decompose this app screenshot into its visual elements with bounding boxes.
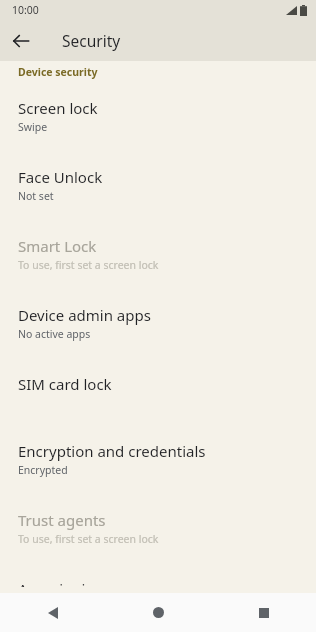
- staticText: Encrypted: [18, 463, 68, 477]
- staticText: To use, first set a screen lock: [18, 532, 159, 546]
- button[interactable]: Encryption and credentials: [0, 435, 316, 504]
- staticText: Not set: [18, 189, 54, 203]
- staticText: App pinning: [18, 579, 104, 587]
- button[interactable]: Back: [0, 20, 42, 61]
- button[interactable]: SIM card lock: [0, 368, 316, 435]
- button[interactable]: Screen lock: [0, 92, 316, 161]
- button[interactable]: Recent apps: [211, 593, 316, 632]
- staticText: Trust agents: [18, 510, 106, 530]
- button[interactable]: Home: [106, 593, 211, 632]
- staticText: Device security: [18, 65, 98, 79]
- staticText: Screen lock: [18, 98, 98, 118]
- button[interactable]: Device admin apps: [0, 299, 316, 368]
- staticText: Security: [62, 30, 121, 51]
- staticText: To use, first set a screen lock: [18, 258, 159, 272]
- staticText: Face Unlock: [18, 167, 103, 187]
- button[interactable]: App pinning: [0, 573, 316, 593]
- button[interactable]: Smart Lock: [0, 230, 316, 299]
- button[interactable]: Face Unlock: [0, 161, 316, 230]
- staticText: Swipe: [18, 120, 48, 134]
- staticText: Encryption and credentials: [18, 441, 206, 461]
- button[interactable]: Trust agents: [0, 504, 316, 573]
- staticText: Smart Lock: [18, 236, 97, 256]
- staticText: No active apps: [18, 327, 91, 341]
- button[interactable]: Back: [0, 593, 106, 632]
- staticText: Device admin apps: [18, 305, 151, 325]
- staticText: SIM card lock: [18, 374, 112, 394]
- staticText: 10:00: [12, 3, 39, 17]
